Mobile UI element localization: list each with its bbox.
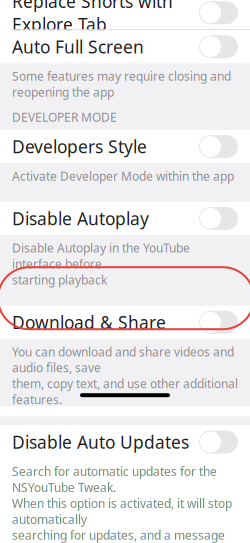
button[interactable]: Disable Auto Updates (0, 425, 250, 458)
button[interactable]: Disable Autoplay (0, 202, 250, 235)
staticText: Search for automatic updates for the NSY… (12, 463, 232, 543)
staticText: Disable Autoplay in the YouTube interfac… (12, 240, 190, 288)
staticText: Activate Developer Mode within the app (12, 168, 234, 184)
button[interactable]: Download & Share (0, 306, 250, 339)
staticText: Some features may require closing and re… (12, 68, 231, 100)
staticText: Download & Share (12, 311, 166, 334)
staticText: Developers Style (12, 135, 147, 158)
staticText: Disable Auto Updates (12, 430, 189, 453)
button[interactable]: Auto Full Screen (0, 30, 250, 63)
staticText: Auto Full Screen (12, 35, 144, 58)
staticText: Replace Shorts with Explore Tab (12, 0, 173, 36)
staticText: You can download and share videos and au… (12, 344, 238, 407)
button[interactable]: Developers Style (0, 130, 250, 163)
staticText: Disable Premium Alerts (12, 0, 151, 2)
button[interactable]: Replace Shorts with Explore Tab (0, 0, 250, 29)
staticText: Disable Autoplay (12, 207, 149, 230)
staticText: DEVELOPER MODE (12, 109, 117, 125)
